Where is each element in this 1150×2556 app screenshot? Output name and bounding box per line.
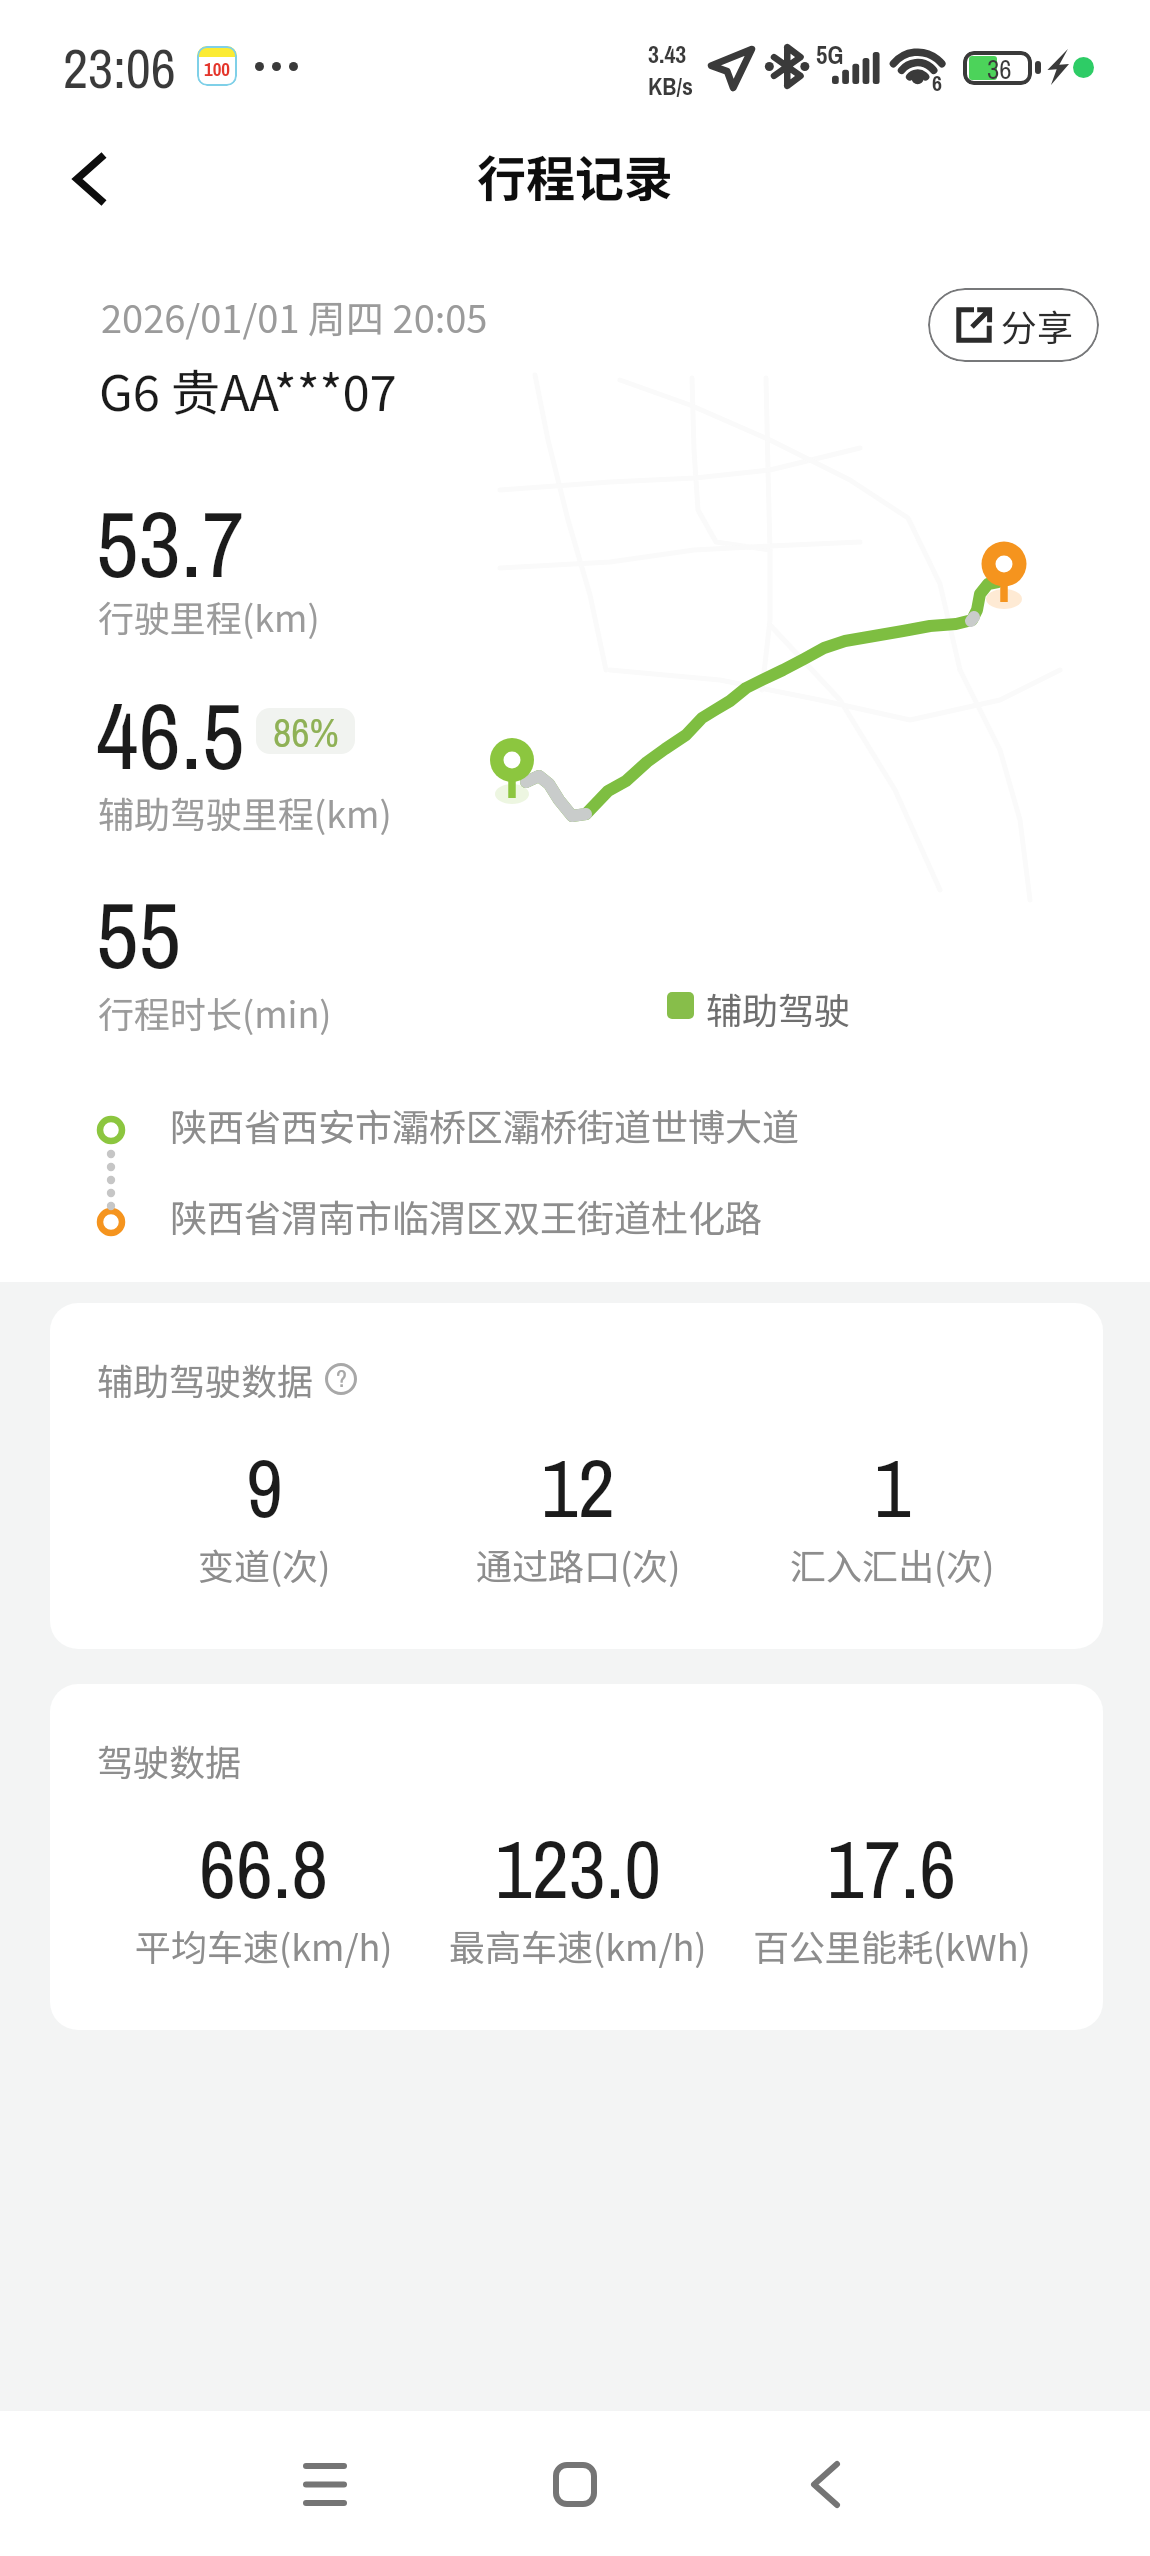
staticText: 行驶里程(km) — [98, 590, 320, 642]
staticText: 驾驶数据 — [97, 1734, 242, 1786]
staticText: 通过路口(次) — [476, 1538, 681, 1590]
staticText: 平均车速(km/h) — [135, 1919, 393, 1971]
staticText: 9 — [246, 1433, 283, 1542]
staticText: 53.7 — [96, 481, 245, 606]
staticText: 辅助驾驶数据 — [97, 1353, 314, 1405]
staticText: 陕西省西安市灞桥区灞桥街道世博大道 — [170, 1098, 799, 1152]
staticText: 5G — [816, 38, 844, 72]
staticText: 12 — [541, 1433, 615, 1542]
staticText: 6 — [932, 68, 943, 98]
staticText: 23:06 — [63, 31, 176, 105]
staticText: 百公里能耗(kWh) — [753, 1919, 1031, 1971]
button[interactable]: About assisted driving data — [321, 1359, 361, 1399]
staticText: KB/s — [648, 70, 693, 102]
staticText: 最高车速(km/h) — [449, 1919, 707, 1971]
staticText: 123.0 — [495, 1814, 662, 1923]
staticText: 辅助驾驶里程(km) — [98, 786, 392, 838]
staticText: 86% — [273, 708, 339, 752]
button[interactable]: Back — [48, 137, 132, 221]
staticText: 17.6 — [827, 1814, 957, 1923]
staticText: 陕西省渭南市临渭区双王街道杜化路 — [170, 1189, 762, 1243]
staticText: 3.43 — [648, 38, 687, 70]
staticText: 行程记录 — [477, 140, 674, 211]
staticText: 36 — [987, 51, 1012, 85]
staticText: 55 — [96, 872, 181, 997]
staticText: 汇入汇出(次) — [790, 1538, 995, 1590]
staticText: 行程时长(min) — [98, 986, 332, 1038]
button[interactable]: Back — [765, 2424, 885, 2544]
staticText: 2026/01/01 周四 20:05 — [101, 289, 488, 344]
staticText: 46.5 — [96, 673, 245, 798]
button[interactable]: Home — [515, 2424, 635, 2544]
button[interactable]: 分享 — [928, 288, 1099, 362]
staticText: 66.8 — [199, 1814, 329, 1923]
staticText: ? — [336, 1362, 347, 1394]
staticText: 分享 — [1001, 299, 1074, 351]
staticText: G6 贵AA***07 — [99, 354, 397, 425]
staticText: 变道(次) — [198, 1538, 331, 1590]
button[interactable]: Recent apps — [265, 2424, 385, 2544]
staticText: 辅助驾驶 — [706, 982, 851, 1034]
staticText: 100 — [204, 56, 230, 82]
staticText: 1 — [874, 1433, 911, 1542]
